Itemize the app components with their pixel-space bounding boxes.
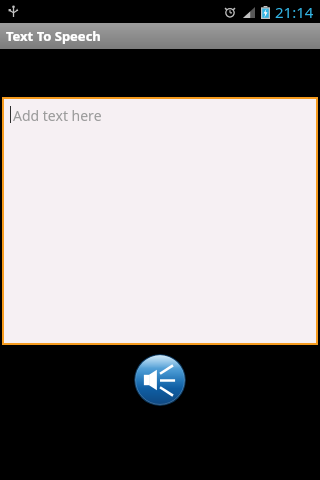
staticText: Text To Speech	[6, 27, 101, 45]
staticText: 21:14	[275, 2, 314, 22]
button[interactable]: Text To Speech	[0, 23, 320, 49]
button[interactable]: Speak text	[134, 354, 186, 406]
button[interactable]: Add text here	[4, 99, 316, 343]
staticText: Add text here	[13, 106, 102, 125]
